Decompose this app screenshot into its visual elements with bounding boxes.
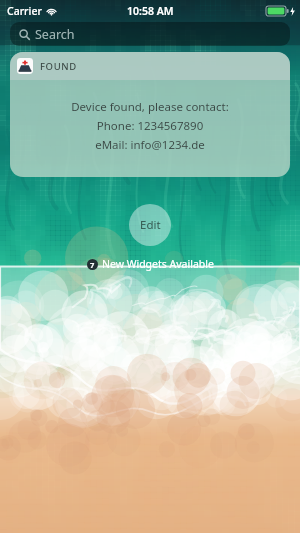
staticText: Edit bbox=[140, 217, 161, 233]
staticText: Search bbox=[35, 26, 75, 43]
button[interactable]: FOUND bbox=[10, 52, 290, 177]
staticText: New Widgets Available bbox=[102, 257, 214, 271]
staticText: eMail: info@1234.de bbox=[10, 137, 290, 153]
button[interactable]: Edit bbox=[129, 204, 171, 246]
staticText: Carrier bbox=[7, 4, 42, 18]
staticText: 10:58 AM bbox=[127, 4, 174, 18]
staticText: FOUND bbox=[40, 60, 77, 73]
staticText: 7 bbox=[90, 260, 95, 270]
staticText: Phone: 1234567890 bbox=[10, 118, 290, 134]
button[interactable]: Search bbox=[10, 22, 290, 46]
staticText: Device found, please contact: bbox=[10, 99, 290, 115]
button[interactable]: 7 bbox=[0, 257, 300, 271]
